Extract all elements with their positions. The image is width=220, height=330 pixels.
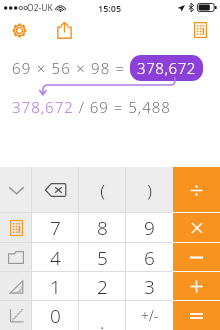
button[interactable]: Decimal point <box>79 301 126 330</box>
button[interactable]: Geometry <box>0 272 32 301</box>
staticText: 4 <box>50 245 61 271</box>
button[interactable]: Backspace <box>32 167 79 213</box>
staticText: 6 <box>144 245 155 271</box>
button[interactable]: Divide <box>173 167 220 213</box>
staticText: +/- <box>141 306 159 325</box>
staticText: ( <box>100 179 105 202</box>
button[interactable]: Settings <box>6 15 32 45</box>
button[interactable]: 3 <box>126 272 173 301</box>
staticText: 8 <box>97 215 108 241</box>
button[interactable]: 1 <box>32 272 79 301</box>
button[interactable]: 5 <box>79 243 126 272</box>
button[interactable]: 7 <box>32 213 79 243</box>
staticText: 15:05 <box>98 2 122 14</box>
staticText: 3 <box>144 274 155 300</box>
button[interactable]: 69 × 56 × 98 = <box>12 55 203 81</box>
button[interactable]: Equals <box>173 301 220 330</box>
staticText: 1 <box>50 274 61 300</box>
button[interactable]: Multiply <box>173 213 220 243</box>
button[interactable]: Graph <box>0 301 32 330</box>
staticText: . <box>100 310 105 330</box>
button[interactable]: 8 <box>79 213 126 243</box>
button[interactable]: Collapse keypad <box>0 167 32 213</box>
staticText: 9 <box>144 215 155 241</box>
button[interactable]: 2 <box>79 272 126 301</box>
button[interactable]: Plus minus <box>126 301 173 330</box>
staticText: 7 <box>50 215 61 241</box>
button[interactable]: Add <box>173 272 220 301</box>
button[interactable]: Folder <box>0 243 32 272</box>
staticText: 5 <box>97 245 108 271</box>
staticText: 2 <box>97 274 108 300</box>
button[interactable]: 4 <box>32 243 79 272</box>
button[interactable]: Calculator <box>187 15 213 45</box>
button[interactable]: Calculator <box>0 213 32 243</box>
button[interactable]: ( <box>79 167 126 213</box>
button[interactable]: 378,672 / 69 = 5,488 <box>12 97 171 117</box>
button[interactable]: Share <box>51 15 77 45</box>
staticText: O2-UK <box>27 2 53 14</box>
staticText: 69 × 56 × 98 = <box>12 58 126 78</box>
button[interactable]: Subtract <box>173 243 220 272</box>
staticText: 0 <box>50 303 61 329</box>
button[interactable]: 9 <box>126 213 173 243</box>
button[interactable]: ) <box>126 167 173 213</box>
staticText: 378,672 / 69 = 5,488 <box>12 97 171 117</box>
button[interactable]: 6 <box>126 243 173 272</box>
staticText: 378,672 <box>137 58 196 78</box>
button[interactable]: 0 <box>32 301 79 330</box>
staticText: ) <box>147 179 152 202</box>
